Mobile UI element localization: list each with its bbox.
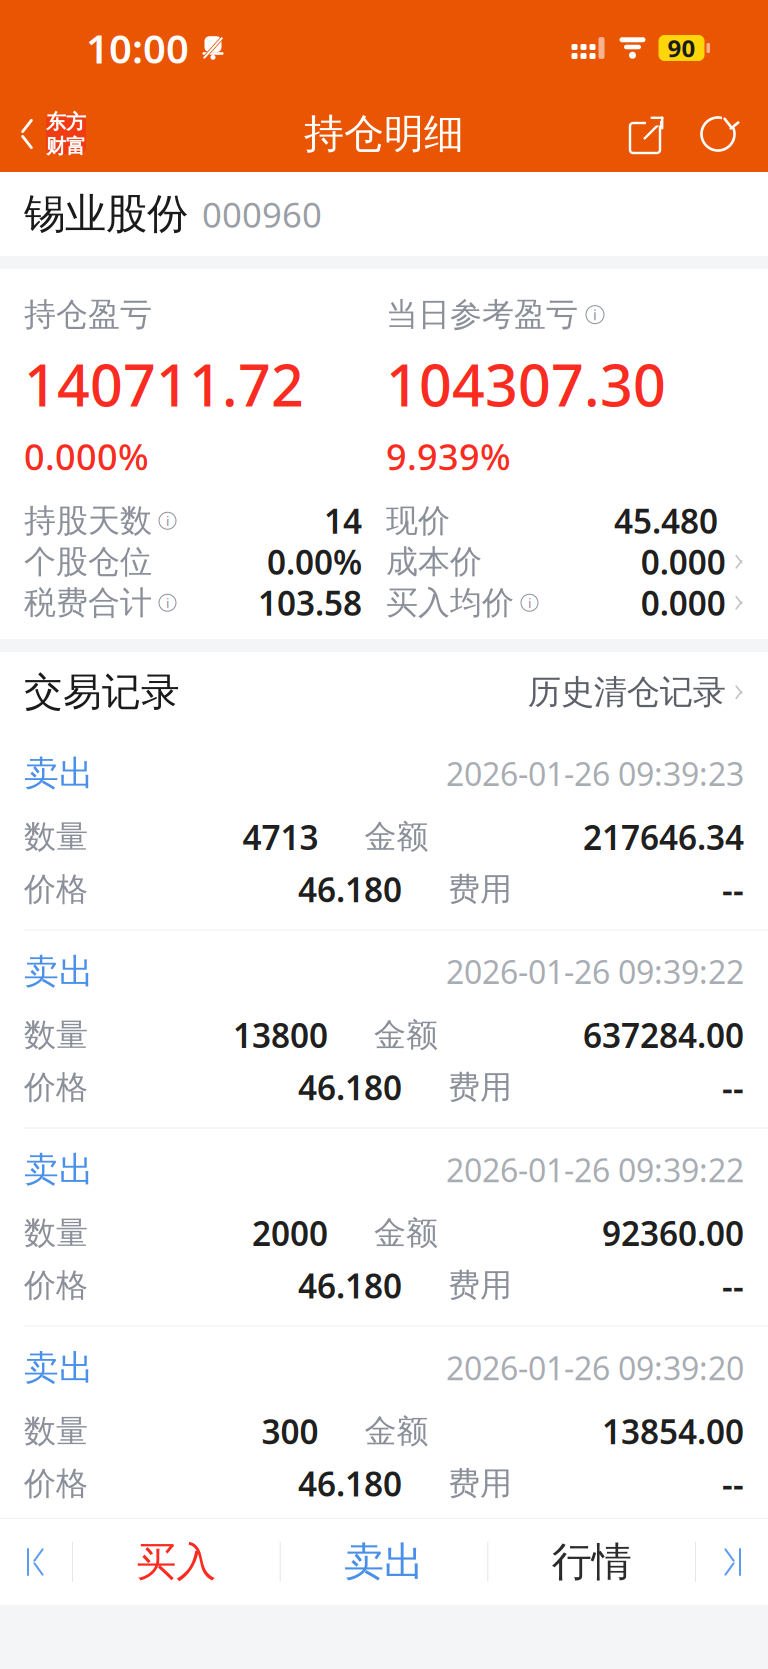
staticText: 104307.30 xyxy=(386,346,666,422)
staticText: 2026-01-26 09:39:23 xyxy=(446,752,744,795)
staticText: -- xyxy=(722,1263,744,1308)
staticText: i xyxy=(593,305,597,324)
staticText: 行情 xyxy=(552,1537,632,1586)
staticText: i xyxy=(166,594,169,612)
staticText: -- xyxy=(722,1065,744,1109)
staticText: 13800 xyxy=(233,1013,328,1057)
staticText: 46.180 xyxy=(298,1461,402,1506)
staticText: 费用 xyxy=(448,870,512,909)
staticText: 卖出 xyxy=(24,1347,94,1389)
staticText: 数量 xyxy=(24,1412,88,1451)
staticText: 金额 xyxy=(364,1412,428,1451)
staticText: 卖出 xyxy=(24,950,94,993)
staticText: 9.939% xyxy=(386,432,511,480)
staticText: 卖出 xyxy=(24,1545,94,1587)
button[interactable]: 买入均价 xyxy=(386,582,744,623)
staticText: -- xyxy=(722,867,744,911)
staticText: 637284.00 xyxy=(583,1013,744,1057)
staticText: 数量 xyxy=(24,1213,88,1253)
button[interactable]: 行情 xyxy=(488,1519,695,1605)
button[interactable]: 成本价 xyxy=(386,541,744,582)
staticText: 财富 xyxy=(46,134,86,159)
staticText: 2026-01-26 09:39:22 xyxy=(446,1148,744,1191)
staticText: 0.000 xyxy=(641,540,726,584)
staticText: 数量 xyxy=(24,1015,88,1055)
staticText: 价格 xyxy=(24,870,88,909)
staticText: 现价 xyxy=(386,501,450,540)
staticText: 140711.72 xyxy=(24,346,304,422)
staticText: 费用 xyxy=(448,1068,512,1107)
staticText: 费用 xyxy=(448,1464,512,1503)
staticText: 4713 xyxy=(242,815,318,859)
staticText: 2026-01-26 09:39:22 xyxy=(446,950,744,993)
button[interactable]: Back xyxy=(0,106,86,162)
staticText: i xyxy=(528,594,531,612)
staticText: 东方 xyxy=(46,109,86,134)
staticText: 历史清仓记录 xyxy=(528,672,726,713)
staticText: 金额 xyxy=(374,1213,438,1253)
staticText: 92360.00 xyxy=(602,1211,744,1255)
staticText: 成本价 xyxy=(386,542,482,581)
staticText: 卖出 xyxy=(344,1537,424,1586)
staticText: 0.00% xyxy=(267,540,362,584)
staticText: 价格 xyxy=(24,1464,88,1503)
staticText: 金额 xyxy=(364,817,428,857)
button[interactable]: 买入 xyxy=(73,1519,280,1605)
staticText: 46.180 xyxy=(298,1065,402,1109)
staticText: 锡业股份 xyxy=(24,189,188,239)
staticText: 买入均价 xyxy=(386,583,514,622)
staticText: 数量 xyxy=(24,817,88,857)
staticText: 46.180 xyxy=(298,867,402,911)
staticText: 费用 xyxy=(448,1266,512,1305)
staticText: 2000 xyxy=(252,1211,328,1255)
staticText: 0.000 xyxy=(641,581,726,625)
button[interactable]: Refresh xyxy=(696,112,740,156)
staticText: 2026-01-26 09:39:20 xyxy=(446,1347,744,1389)
staticText: 持仓明细 xyxy=(304,109,464,158)
button[interactable]: Share xyxy=(626,112,670,156)
staticText: i xyxy=(166,512,169,530)
staticText: 持仓盈亏 xyxy=(24,295,152,334)
staticText: 税费合计 xyxy=(24,583,152,622)
staticText: -- xyxy=(722,1461,744,1506)
staticText: 90 xyxy=(667,32,695,64)
staticText: 2026-01-26 09:39:19 xyxy=(446,1545,744,1587)
button[interactable]: Previous xyxy=(0,1519,72,1605)
staticText: 价格 xyxy=(24,1068,88,1107)
staticText: 14 xyxy=(324,499,362,543)
staticText: 103.58 xyxy=(258,581,362,625)
staticText: 持股天数 xyxy=(24,501,152,540)
staticText: 46.180 xyxy=(298,1263,402,1308)
staticText: 金额 xyxy=(374,1015,438,1055)
staticText: 卖出 xyxy=(24,752,94,795)
button[interactable]: Next xyxy=(696,1519,768,1605)
staticText: 10:00 xyxy=(86,21,189,74)
staticText: 300 xyxy=(261,1409,318,1453)
staticText: 当日参考盈亏 xyxy=(386,295,578,334)
staticText: 217646.34 xyxy=(583,815,744,859)
staticText: 000960 xyxy=(202,191,322,237)
button[interactable]: 历史清仓记录 xyxy=(528,672,744,713)
staticText: 卖出 xyxy=(24,1148,94,1191)
staticText: 买入 xyxy=(136,1537,216,1586)
staticText: 45.480 xyxy=(614,499,718,543)
staticText: 0.000% xyxy=(24,432,149,480)
staticText: 13854.00 xyxy=(602,1409,744,1453)
staticText: 个股仓位 xyxy=(24,542,152,581)
staticText: 交易记录 xyxy=(24,668,180,716)
button[interactable]: 现价 xyxy=(386,500,744,541)
staticText: 价格 xyxy=(24,1266,88,1305)
button[interactable]: 卖出 xyxy=(281,1519,487,1605)
